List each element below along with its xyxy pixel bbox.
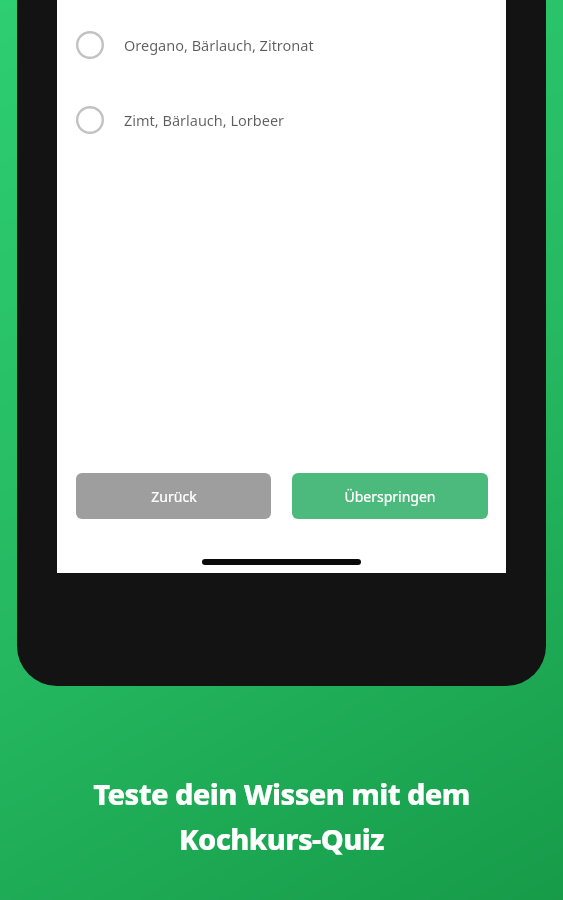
staticText: Zimt, Bärlauch, Lorbeer — [124, 110, 285, 130]
staticText: Überspringen — [344, 487, 436, 506]
button[interactable]: Oregano, Bärlauch, Zitronat — [57, 22, 506, 68]
button[interactable]: Zurück — [76, 473, 271, 519]
staticText: Zurück — [151, 487, 197, 506]
staticText: Kochkurs-Quiz — [179, 819, 384, 858]
staticText: Oregano, Bärlauch, Zitronat — [124, 35, 314, 55]
staticText: Teste dein Wissen mit dem — [93, 774, 470, 813]
button[interactable]: Zimt, Bärlauch, Lorbeer — [57, 97, 506, 143]
button[interactable]: Überspringen — [292, 473, 488, 519]
